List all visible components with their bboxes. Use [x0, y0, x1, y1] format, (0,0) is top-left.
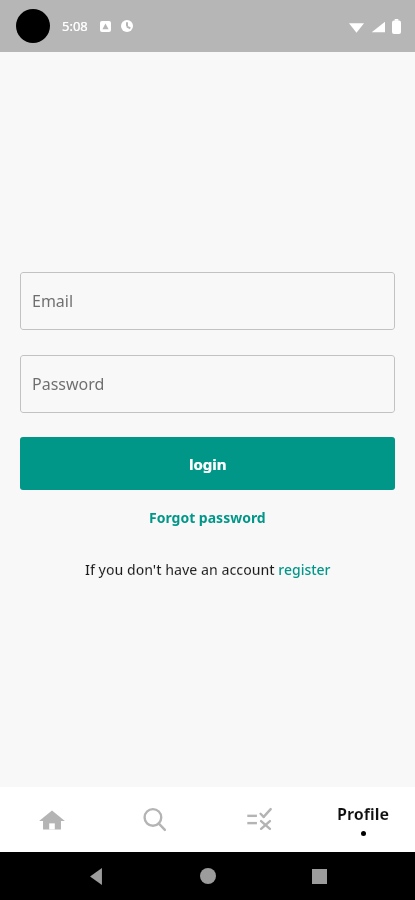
button[interactable]: Back	[81, 861, 111, 891]
button[interactable]: Email	[20, 272, 395, 330]
button[interactable]: Home	[193, 861, 223, 891]
staticText: login	[189, 454, 227, 474]
button[interactable]: Home	[0, 787, 103, 852]
button[interactable]: Recents	[304, 861, 334, 891]
staticText: Password	[32, 373, 105, 395]
button[interactable]: Profile	[311, 787, 415, 852]
staticText: Forgot password	[149, 508, 266, 527]
staticText: Email	[32, 290, 74, 312]
button[interactable]: login	[20, 437, 395, 490]
button[interactable]: Forgot password	[20, 504, 395, 531]
button[interactable]: If you don't have an account register	[20, 556, 395, 583]
staticText: Profile	[337, 803, 390, 825]
button[interactable]: Search	[103, 787, 207, 852]
button[interactable]: Tasks	[207, 787, 311, 852]
staticText: If you don't have an account register	[85, 560, 331, 579]
staticText: 5:08	[62, 17, 88, 35]
button[interactable]: Password	[20, 355, 395, 413]
